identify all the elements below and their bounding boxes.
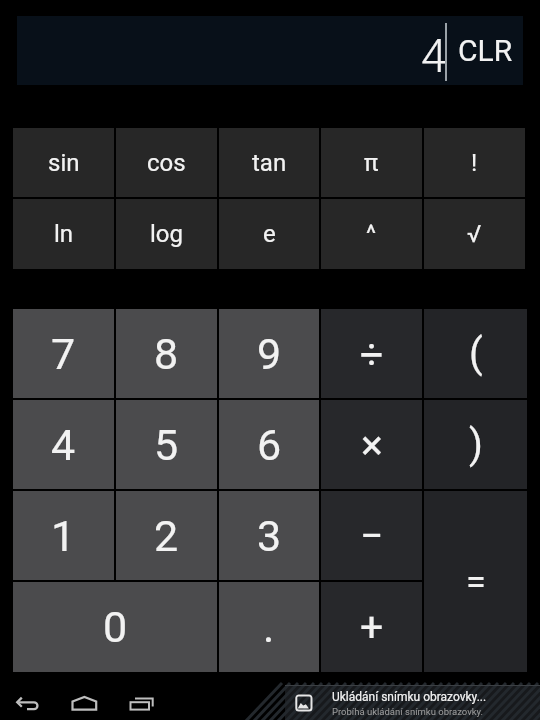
staticText: ) bbox=[469, 421, 483, 468]
staticText: Ukládání snímku obrazovky... bbox=[332, 690, 487, 704]
button[interactable]: 8 bbox=[116, 309, 217, 398]
staticText: tan bbox=[252, 149, 287, 177]
button[interactable]: + bbox=[321, 582, 422, 672]
button[interactable]: ! bbox=[424, 128, 525, 197]
staticText: 4 bbox=[51, 420, 76, 470]
staticText: √ bbox=[467, 220, 482, 248]
staticText: Probíhá ukládání snímku obrazovky. bbox=[332, 706, 484, 717]
staticText: 5 bbox=[154, 420, 179, 470]
staticText: cos bbox=[147, 149, 186, 177]
staticText: CLR bbox=[458, 33, 513, 68]
button[interactable]: π bbox=[321, 128, 422, 197]
staticText: 1 bbox=[51, 511, 76, 561]
button[interactable]: 9 bbox=[219, 309, 319, 398]
button[interactable]: log bbox=[116, 199, 217, 269]
staticText: 4 bbox=[421, 29, 447, 83]
staticText: sin bbox=[48, 149, 80, 177]
staticText: log bbox=[150, 220, 183, 248]
button[interactable] bbox=[70, 695, 98, 712]
button[interactable]: 4 bbox=[13, 400, 114, 489]
staticText: 3 bbox=[257, 511, 282, 561]
staticText: π bbox=[364, 149, 379, 177]
staticText: ( bbox=[469, 330, 483, 377]
button[interactable]: CLR bbox=[447, 16, 523, 85]
staticText: × bbox=[361, 421, 383, 469]
button[interactable]: ^ bbox=[321, 199, 422, 269]
staticText: 2 bbox=[154, 511, 179, 561]
button[interactable]: 1 bbox=[13, 491, 114, 580]
button[interactable]: = bbox=[424, 491, 527, 672]
staticText: . bbox=[263, 602, 275, 652]
button[interactable]: cos bbox=[116, 128, 217, 197]
button[interactable]: − bbox=[321, 491, 422, 580]
staticText: + bbox=[360, 603, 384, 651]
button[interactable]: ( bbox=[424, 309, 527, 398]
staticText: e bbox=[263, 220, 276, 248]
button[interactable]: 5 bbox=[116, 400, 217, 489]
button[interactable]: 2 bbox=[116, 491, 217, 580]
staticText: 7 bbox=[51, 329, 76, 379]
button[interactable]: 0 bbox=[13, 582, 217, 672]
staticText: ^ bbox=[366, 220, 377, 248]
button[interactable]: √ bbox=[424, 199, 525, 269]
staticText: 8 bbox=[154, 329, 179, 379]
staticText: 0 bbox=[103, 602, 128, 652]
button[interactable]: sin bbox=[13, 128, 114, 197]
staticText: 6 bbox=[257, 420, 282, 470]
button[interactable] bbox=[14, 694, 42, 714]
button[interactable]: ln bbox=[13, 199, 114, 269]
staticText: 9 bbox=[257, 329, 282, 379]
staticText: ln bbox=[54, 220, 74, 248]
button[interactable]: e bbox=[219, 199, 319, 269]
button[interactable]: . bbox=[219, 582, 319, 672]
button[interactable]: ÷ bbox=[321, 309, 422, 398]
staticText: − bbox=[360, 512, 384, 560]
staticText: ! bbox=[471, 149, 478, 177]
staticText: ÷ bbox=[360, 330, 384, 378]
button[interactable]: Ukládání snímku obrazovky... bbox=[285, 685, 540, 720]
button[interactable] bbox=[128, 695, 156, 713]
button[interactable]: 3 bbox=[219, 491, 319, 580]
button[interactable]: 6 bbox=[219, 400, 319, 489]
button[interactable]: ) bbox=[424, 400, 527, 489]
button[interactable]: 7 bbox=[13, 309, 114, 398]
button[interactable]: × bbox=[321, 400, 422, 489]
button[interactable]: tan bbox=[219, 128, 319, 197]
staticText: = bbox=[466, 561, 486, 603]
